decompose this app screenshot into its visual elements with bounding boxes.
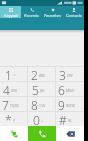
staticText: W;: [68, 118, 73, 123]
staticText: +: [41, 118, 43, 123]
button[interactable]: 6: [56, 82, 84, 96]
staticText: 4: [3, 82, 10, 96]
staticText: GHI: [11, 88, 18, 93]
staticText: P,: [13, 118, 16, 123]
staticText: 7: [2, 97, 9, 111]
button[interactable]: Call: [28, 126, 56, 141]
button[interactable]: Contacts: [63, 6, 84, 30]
staticText: 3: [59, 67, 66, 81]
staticText: JKL: [40, 88, 45, 93]
button[interactable]: #: [56, 112, 84, 126]
staticText: 8: [31, 97, 38, 111]
button[interactable]: 2: [28, 67, 56, 81]
button[interactable]: Backspace: [56, 126, 84, 141]
button[interactable]: 4: [0, 82, 28, 96]
staticText: WXYZ: [66, 103, 75, 108]
button[interactable]: 1: [0, 67, 28, 81]
button[interactable]: Keypad: [0, 6, 21, 30]
button[interactable]: 8: [28, 97, 56, 111]
staticText: Contacts: [66, 13, 82, 18]
staticText: DEF: [67, 73, 74, 78]
staticText: #: [59, 112, 67, 126]
staticText: 0: [33, 112, 40, 126]
button[interactable]: *: [0, 112, 28, 126]
staticText: ABC: [39, 73, 46, 78]
button[interactable]: Favorites: [42, 6, 63, 30]
staticText: 6: [58, 82, 65, 96]
button[interactable]: Add to contacts: [0, 126, 28, 141]
staticText: ∞: [13, 73, 16, 77]
staticText: Recents: [24, 13, 39, 18]
button[interactable]: 7: [0, 97, 28, 111]
staticText: Favorites: [44, 13, 61, 18]
button[interactable]: 9: [56, 97, 84, 111]
staticText: *: [5, 112, 12, 126]
staticText: 2: [31, 67, 38, 81]
staticText: 5: [32, 82, 39, 96]
staticText: TUV: [39, 103, 46, 108]
button[interactable]: 3: [56, 67, 84, 81]
button[interactable]: 0: [28, 112, 56, 126]
staticText: PQRS: [10, 103, 19, 108]
staticText: MNO: [66, 88, 75, 93]
button[interactable]: 5: [28, 82, 56, 96]
staticText: Keypad: [4, 13, 18, 18]
staticText: 1: [5, 67, 12, 81]
staticText: 9: [58, 97, 65, 111]
button[interactable]: Recents: [21, 6, 42, 30]
